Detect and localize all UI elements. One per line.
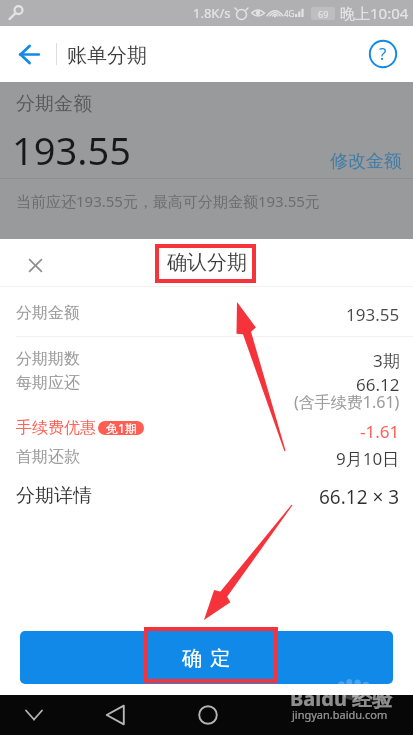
staticText: 3期: [373, 349, 400, 372]
button[interactable]: Back: [11, 36, 48, 73]
button[interactable]: Home: [191, 698, 225, 732]
staticText: 免1期: [106, 421, 137, 434]
staticText: 分期金额: [16, 92, 92, 116]
staticText: 分期详情: [16, 484, 92, 508]
staticText: -1.61: [360, 420, 400, 443]
staticText: 69: [318, 8, 329, 20]
staticText: (含手续费1.61): [294, 391, 400, 413]
staticText: 193.55: [346, 303, 400, 326]
staticText: 66.12 × 3: [319, 484, 400, 510]
staticText: 当前应还193.55元，最高可分期金额193.55元: [16, 191, 320, 211]
button[interactable]: 确 定: [20, 631, 393, 684]
button[interactable]: Close: [20, 250, 51, 281]
staticText: 193.55: [12, 124, 131, 176]
staticText: 9月10日: [336, 447, 400, 470]
button[interactable]: Help: [364, 35, 402, 73]
staticText: 确 定: [182, 644, 232, 671]
staticText: 首期还款: [16, 447, 80, 467]
staticText: 分期金额: [16, 303, 80, 323]
button[interactable]: 修改金额: [330, 150, 402, 173]
staticText: jingyan.baidu.com: [292, 707, 388, 722]
staticText: 账单分期: [67, 43, 147, 68]
staticText: 4G: [284, 8, 295, 19]
staticText: 确认分期: [167, 250, 247, 275]
staticText: 每期应还: [16, 373, 80, 393]
button[interactable]: Back: [99, 698, 133, 732]
staticText: 手续费优惠: [16, 418, 96, 438]
staticText: 66.12: [356, 373, 400, 396]
staticText: 1.8K/s: [193, 4, 231, 22]
staticText: 分期期数: [16, 349, 80, 369]
staticText: ?: [379, 42, 387, 65]
staticText: Baidu 经验: [290, 685, 393, 712]
staticText: 晚上10:04: [340, 3, 409, 23]
button[interactable]: Hide keyboard: [17, 698, 51, 732]
